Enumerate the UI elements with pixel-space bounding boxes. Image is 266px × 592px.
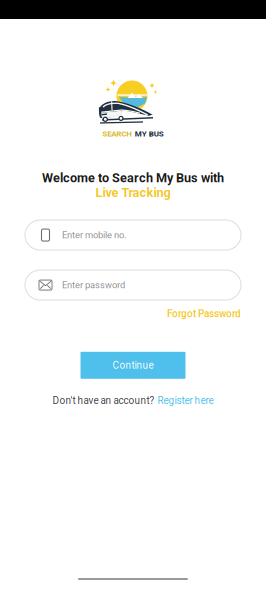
- staticText: Register here: [157, 395, 213, 406]
- staticText: SEARCH: [102, 129, 132, 138]
- button[interactable]: Register here: [157, 395, 213, 406]
- button[interactable]: Continue: [80, 352, 185, 379]
- staticText: Forgot Password: [167, 308, 241, 320]
- button[interactable]: Forgot Password: [167, 308, 241, 320]
- staticText: Enter mobile no.: [62, 230, 126, 240]
- staticText: MY BUS: [135, 129, 164, 138]
- staticText: Enter password: [62, 280, 125, 290]
- staticText: Continue: [112, 359, 153, 371]
- button[interactable]: Enter password: [25, 270, 241, 300]
- button[interactable]: Enter mobile no.: [25, 220, 241, 250]
- staticText: Don't have an account?: [52, 395, 154, 406]
- staticText: Welcome to Search My Bus with: [42, 170, 224, 185]
- staticText: Live Tracking: [95, 185, 170, 200]
